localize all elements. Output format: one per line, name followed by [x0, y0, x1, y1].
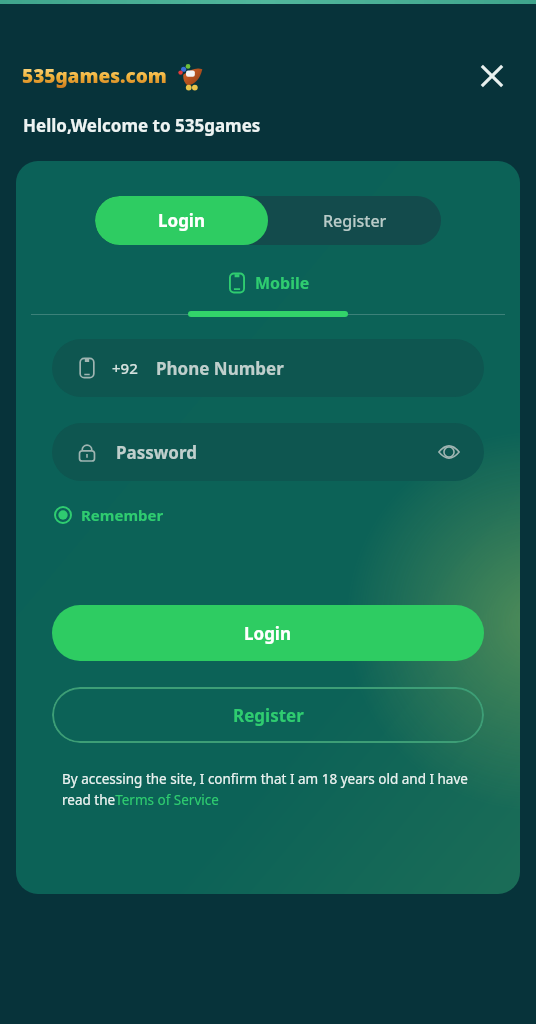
staticText: Register	[233, 704, 304, 727]
button[interactable]: Password	[52, 423, 484, 481]
staticText: +92	[112, 358, 138, 378]
staticText: Password	[116, 441, 197, 464]
button[interactable]: Register	[268, 196, 441, 245]
button[interactable]: Login	[95, 196, 268, 245]
button[interactable]: Show password	[436, 439, 462, 465]
staticText: Remember	[81, 505, 164, 525]
staticText: 535games.com	[22, 63, 167, 89]
button[interactable]: Close	[468, 52, 516, 100]
staticText: Hello,Welcome to 535games	[23, 114, 261, 137]
staticText: Phone Number	[156, 357, 284, 380]
button[interactable]: Remember	[54, 505, 164, 525]
staticText: Mobile	[255, 272, 310, 294]
button[interactable]: +92	[52, 339, 484, 397]
staticText: Register	[323, 210, 387, 232]
button[interactable]: Register	[52, 687, 484, 743]
staticText: By accessing the site, I confirm that I …	[62, 770, 480, 809]
staticText: Login	[244, 622, 292, 645]
staticText: Login	[158, 209, 206, 232]
button[interactable]: Login	[52, 605, 484, 661]
button[interactable]: Mobile	[226, 272, 310, 294]
